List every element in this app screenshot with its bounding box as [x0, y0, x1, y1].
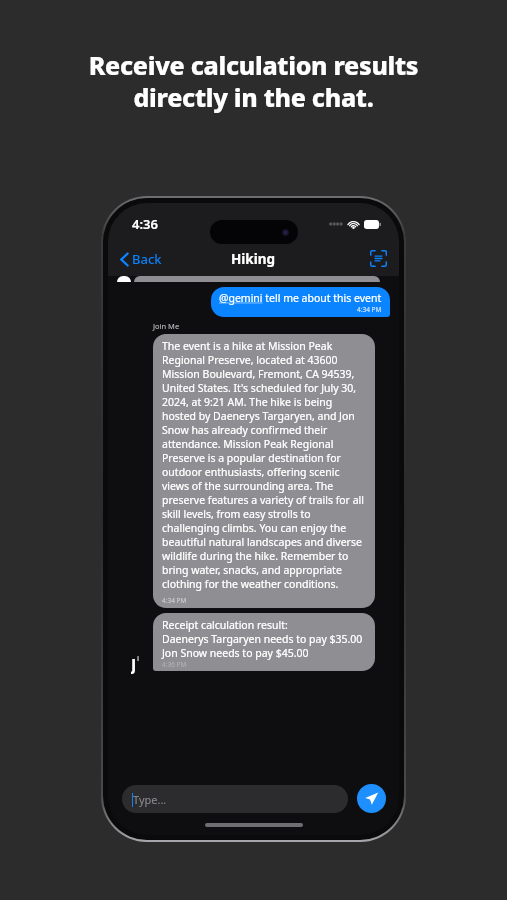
button[interactable]: Sender avatar — [125, 654, 145, 674]
staticText: Receipt calculation result: Daenerys Tar… — [162, 618, 363, 660]
staticText: @gemini tell me about this event — [219, 291, 382, 305]
staticText: 4:36 PM — [162, 660, 187, 669]
button[interactable]: @gemini tell me about this event — [211, 287, 390, 317]
staticText: Join Me — [153, 321, 180, 331]
staticText: Back — [132, 250, 162, 268]
staticText: 4:34 PM — [162, 596, 187, 605]
staticText: Type... — [133, 792, 167, 807]
button[interactable]: Send — [357, 784, 386, 813]
button[interactable]: Type... — [122, 785, 348, 813]
staticText: Receive calculation results directly in … — [46, 48, 461, 114]
staticText: 4:36 — [132, 215, 158, 233]
button[interactable]: The event is a hike at Mission Peak Regi… — [153, 334, 375, 608]
staticText: The event is a hike at Mission Peak Regi… — [162, 339, 366, 591]
staticText: J — [131, 654, 137, 674]
staticText: i — [137, 654, 140, 664]
button[interactable]: Scan document — [358, 244, 399, 273]
button[interactable]: Back — [108, 246, 170, 272]
staticText: Hiking — [231, 250, 276, 268]
button[interactable]: Receipt calculation result: Daenerys Tar… — [153, 613, 375, 671]
staticText: 4:34 PM — [357, 305, 382, 314]
